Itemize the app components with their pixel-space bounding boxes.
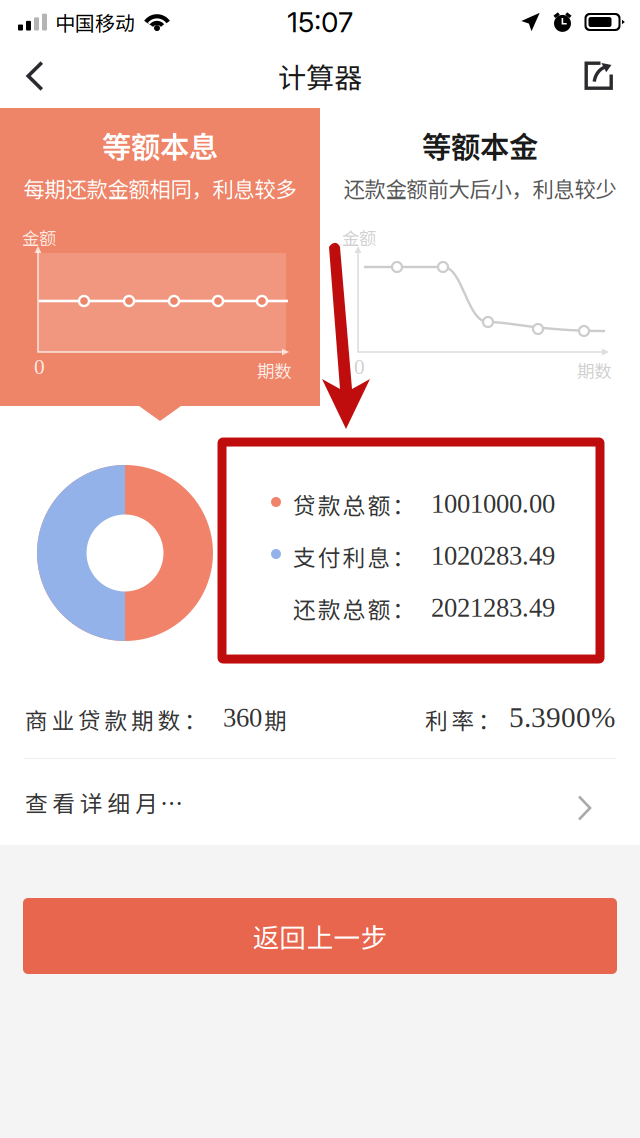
staticText: 每期还款金额相同，利息较多 [23,173,296,203]
staticText: 还款总额： [293,592,415,625]
staticText: 查看详细月供 [25,786,181,818]
staticText: 等额本金 [422,124,538,166]
button[interactable]: 分享 [562,46,640,106]
staticText: 中国移动 [55,7,135,36]
staticText: 0 [354,355,365,379]
staticText: 期 [264,703,287,736]
staticText: 期数 [257,358,291,383]
staticText: 2021283.49 [431,593,555,622]
staticText: 金额 [342,225,376,250]
staticText: 金额 [22,225,56,250]
button[interactable]: 等额本息 [0,108,320,421]
button[interactable]: 返回 [0,46,66,106]
staticText: 15:07 [287,5,353,39]
staticText: 贷款总额： [293,488,415,521]
staticText: 5.3900% [509,701,615,733]
staticText: 期数 [577,358,611,383]
staticText: 返回上一步 [252,917,387,955]
button[interactable]: 等额本金 [320,108,640,421]
staticText: 计算器 [278,56,362,96]
staticText: 利率： [425,703,501,736]
staticText: 360 [223,703,262,732]
staticText: 还款金额前大后小，利息较少 [343,173,616,203]
staticText: 1001000.00 [431,489,555,518]
staticText: 支付利息： [293,540,415,573]
staticText: 0 [34,355,45,379]
button[interactable]: 返回上一步 [23,898,617,974]
staticText: 等额本息 [102,124,218,166]
staticText: 1020283.49 [431,541,555,570]
staticText: 商业贷款期数： [25,703,207,736]
button[interactable]: 查看详细月供 [0,759,640,845]
